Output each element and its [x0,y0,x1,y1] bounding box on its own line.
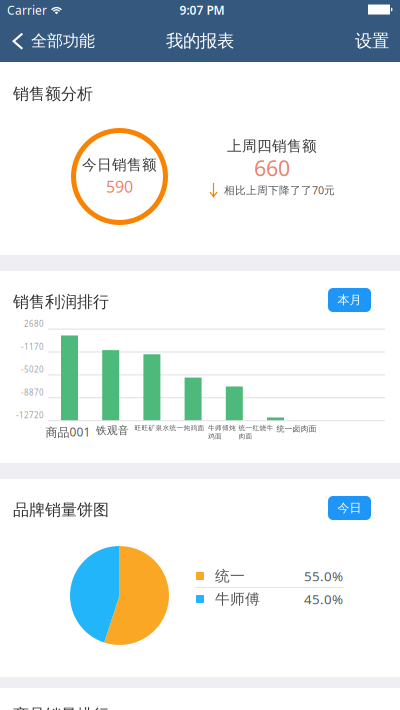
staticText: 商品销量排行 [13,705,109,710]
staticText: -8870 [21,387,44,398]
staticText: -5020 [21,364,44,375]
staticText: 相比上周下降了了70元 [224,183,335,197]
staticText: 统一 [215,567,245,585]
staticText: 2680 [24,318,44,329]
staticText: 全部功能 [31,31,95,51]
button[interactable]: 本月 [328,288,371,312]
staticText: 590 [106,176,133,197]
staticText: 今日销售额 [82,156,157,174]
staticText: 660 [254,154,290,182]
staticText: 统一卤肉面 [276,424,316,434]
button[interactable]: 今日 [328,496,371,520]
staticText: 上周四销售额 [227,137,317,155]
staticText: 统一红烧牛肉面 [238,424,273,440]
staticText: 牛师傅炖鸡面 [208,424,236,440]
staticText: 销售额分析 [13,84,93,104]
staticText: 今日 [337,501,361,515]
staticText: 品牌销量饼图 [13,500,109,520]
button[interactable]: 全部功能 [0,20,103,62]
staticText: 商品001 [45,424,90,440]
staticText: -12720 [16,410,44,420]
staticText: 我的报表 [166,30,234,52]
staticText: 销售利润排行 [13,292,109,312]
staticText: Carrier [7,2,47,18]
staticText: 45.0% [304,590,343,608]
staticText: 本月 [337,293,361,307]
button[interactable]: 设置 [343,20,400,62]
staticText: -1170 [21,341,44,352]
staticText: 设置 [355,30,389,52]
staticText: 铁观音 [96,424,129,437]
staticText: 旺旺矿泉水统一炖鸡面 [134,424,204,432]
staticText: 55.0% [304,567,343,585]
staticText: 9:07 PM [179,2,224,18]
staticText: 牛师傅 [215,590,260,608]
